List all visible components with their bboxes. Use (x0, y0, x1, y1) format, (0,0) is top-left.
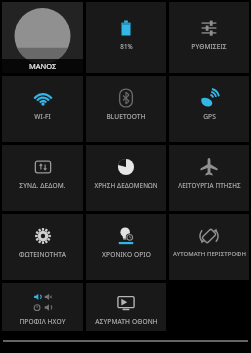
button[interactable]: ΛΕΙΤΟΥΡΓΙΑ ΠΤΗΣΗΣ (169, 145, 249, 211)
button[interactable]: ΠΡΟΦΙΛ ΗΧΟΥ (2, 283, 83, 331)
staticText: ΡΥΘΜΙΣΕΙΣ (191, 42, 227, 51)
staticText: GPS (203, 112, 216, 121)
staticText: ΣΥΝΔ. ΔΕΔΟΜ. (19, 181, 66, 190)
button[interactable]: ΣΥΝΔ. ΔΕΔΟΜ. (2, 145, 83, 211)
button[interactable]: ΜΑΝΟΣ (2, 2, 83, 73)
button[interactable]: ΑΥΤΟΜΑΤΗ ΠΕΡΙΣΤΡΟΦΗ (169, 214, 249, 280)
staticText: ΑΣΥΡΜΑΤΗ ΟΘΟΝΗ (95, 317, 158, 326)
staticText: ΛΕΙΤΟΥΡΓΙΑ ΠΤΗΣΗΣ (178, 181, 241, 190)
button[interactable]: ΧΡΟΝΙΚΟ ΟΡΙΟ (86, 214, 166, 280)
button[interactable]: ΧΡΗΣΗ ΔΕΔΟΜΕΝΩΝ (86, 145, 166, 211)
button[interactable]: WI-FI (2, 76, 83, 142)
staticText: WI-FI (34, 112, 51, 121)
staticText: ΠΡΟΦΙΛ ΗΧΟΥ (19, 317, 66, 326)
button[interactable]: GPS (169, 76, 249, 142)
button[interactable]: BLUETOOTH (86, 76, 166, 142)
button[interactable]: ΑΣΥΡΜΑΤΗ ΟΘΟΝΗ (86, 283, 166, 331)
button[interactable]: ΦΩΤΕΙΝΟΤΗΤΑ (2, 214, 83, 280)
staticText: ΧΡΟΝΙΚΟ ΟΡΙΟ (102, 250, 151, 259)
button[interactable]: ΡΥΘΜΙΣΕΙΣ (169, 2, 249, 73)
staticText: ΜΑΝΟΣ (29, 61, 57, 71)
staticText: ΦΩΤΕΙΝΟΤΗΤΑ (19, 250, 66, 259)
button[interactable]: 81% (86, 2, 166, 73)
staticText: 81% (120, 42, 133, 50)
staticText: BLUETOOTH (106, 112, 146, 121)
staticText: ΧΡΗΣΗ ΔΕΔΟΜΕΝΩΝ (94, 181, 158, 190)
staticText: ΑΥΤΟΜΑΤΗ ΠΕΡΙΣΤΡΟΦΗ (173, 250, 246, 258)
